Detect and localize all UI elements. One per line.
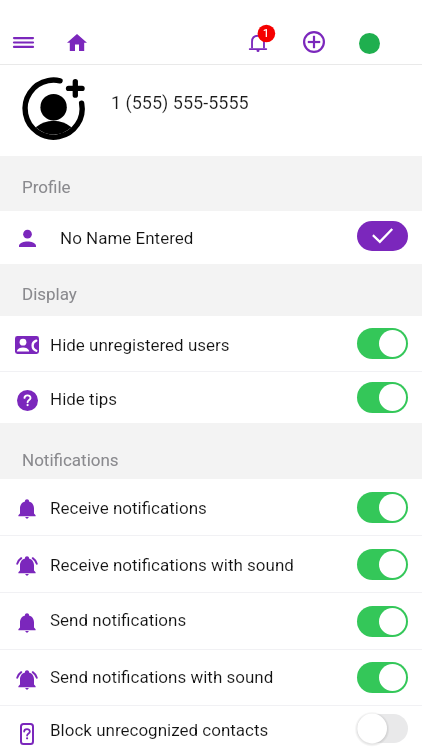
button[interactable]: Receive notifications — [0, 479, 422, 535]
button[interactable]: Confirm — [357, 221, 408, 251]
button[interactable]: On — [357, 606, 408, 637]
button[interactable]: Menu — [4, 23, 42, 61]
staticText: Block unrecognized contacts — [50, 720, 269, 740]
staticText: Display — [22, 284, 77, 304]
staticText: Send notifications — [50, 610, 187, 630]
button[interactable]: Off — [357, 713, 408, 744]
staticText: Receive notifications with sound — [50, 555, 294, 575]
button[interactable]: Status — [350, 24, 388, 62]
button[interactable]: On — [357, 492, 408, 523]
staticText: Hide unregistered users — [50, 335, 230, 355]
staticText: Send notifications with sound — [50, 667, 274, 687]
button[interactable]: Hide unregistered users — [0, 316, 422, 371]
button[interactable]: No Name Entered — [0, 211, 422, 264]
staticText: Notifications — [22, 450, 119, 470]
staticText: 1 (555) 555-5555 — [111, 92, 249, 113]
staticText: Profile — [22, 177, 71, 197]
button[interactable]: Send notifications — [0, 593, 422, 649]
staticText: Receive notifications — [50, 498, 207, 518]
staticText: 1 — [259, 27, 273, 40]
button[interactable]: 1 (555) 555-5555 — [0, 65, 422, 156]
staticText: No Name Entered — [60, 228, 194, 248]
button[interactable]: On — [357, 328, 408, 359]
button[interactable]: Home — [58, 23, 96, 61]
button[interactable]: Notifications — [239, 23, 277, 61]
button[interactable]: Block unrecognized contacts — [0, 706, 422, 750]
button[interactable]: Send notifications with sound — [0, 650, 422, 705]
button[interactable]: On — [357, 549, 408, 580]
button[interactable]: Receive notifications with sound — [0, 536, 422, 592]
button[interactable]: Add — [295, 23, 333, 61]
staticText: Hide tips — [50, 389, 118, 409]
button[interactable]: On — [357, 382, 408, 413]
button[interactable]: On — [357, 662, 408, 693]
button[interactable]: Hide tips — [0, 372, 422, 423]
